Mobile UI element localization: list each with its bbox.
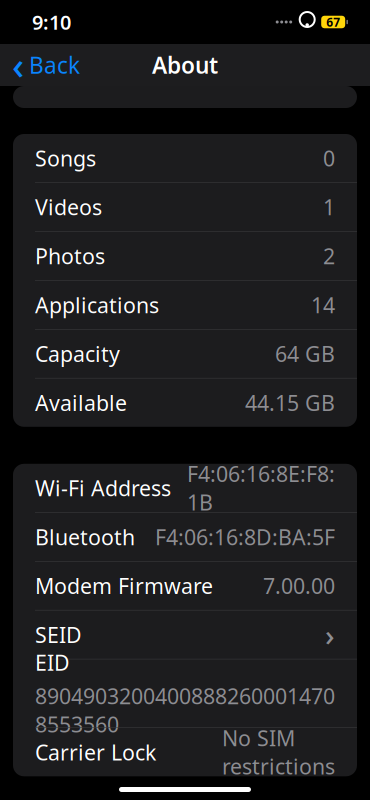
staticText: Capacity <box>35 340 120 368</box>
staticText: Carrier Lock <box>35 738 156 766</box>
button[interactable]: SEID <box>13 610 357 659</box>
button[interactable]: Wi-Fi Address <box>13 464 357 512</box>
staticText: Available <box>35 388 127 417</box>
staticText: 44.15 GB <box>245 388 335 417</box>
button[interactable]: Photos <box>13 232 357 280</box>
button[interactable]: Modem Firmware <box>13 562 357 610</box>
button[interactable]: ‹ <box>0 45 92 85</box>
staticText: Photos <box>35 242 105 270</box>
button[interactable]: Songs <box>13 134 357 182</box>
staticText: 64 GB <box>275 340 335 368</box>
staticText: F4:06:16:8E:F8:1B <box>187 460 335 516</box>
button[interactable]: EID <box>13 659 357 727</box>
button[interactable]: Carrier Lock <box>13 728 357 776</box>
staticText: ‹ <box>12 40 24 90</box>
staticText: › <box>325 615 335 654</box>
button[interactable]: Bluetooth <box>13 513 357 561</box>
staticText: SEID <box>35 620 82 649</box>
staticText: 1 <box>323 193 335 221</box>
staticText: 0 <box>323 144 335 172</box>
staticText: Back <box>29 50 80 80</box>
staticText: 67 <box>326 14 340 30</box>
staticText: F4:06:16:8D:BA:5F <box>155 523 335 551</box>
staticText: 89049032004008882600014708553560 <box>35 682 335 738</box>
staticText: Videos <box>35 193 102 221</box>
staticText: 7.00.00 <box>263 572 335 600</box>
button[interactable]: Available <box>13 378 357 427</box>
staticText: Applications <box>35 291 159 319</box>
staticText: 14 <box>311 291 335 319</box>
staticText: No SIM restrictions <box>222 724 335 780</box>
button[interactable]: Capacity <box>13 330 357 378</box>
button[interactable]: Videos <box>13 183 357 231</box>
staticText: Wi-Fi Address <box>35 474 171 502</box>
staticText: 2 <box>323 242 335 270</box>
staticText: About <box>152 50 218 80</box>
staticText: Bluetooth <box>35 523 135 551</box>
staticText: 9:10 <box>32 9 71 35</box>
staticText: Songs <box>35 144 96 172</box>
staticText: EID <box>35 648 70 677</box>
staticText: Modem Firmware <box>35 572 213 600</box>
button[interactable]: Applications <box>13 281 357 329</box>
